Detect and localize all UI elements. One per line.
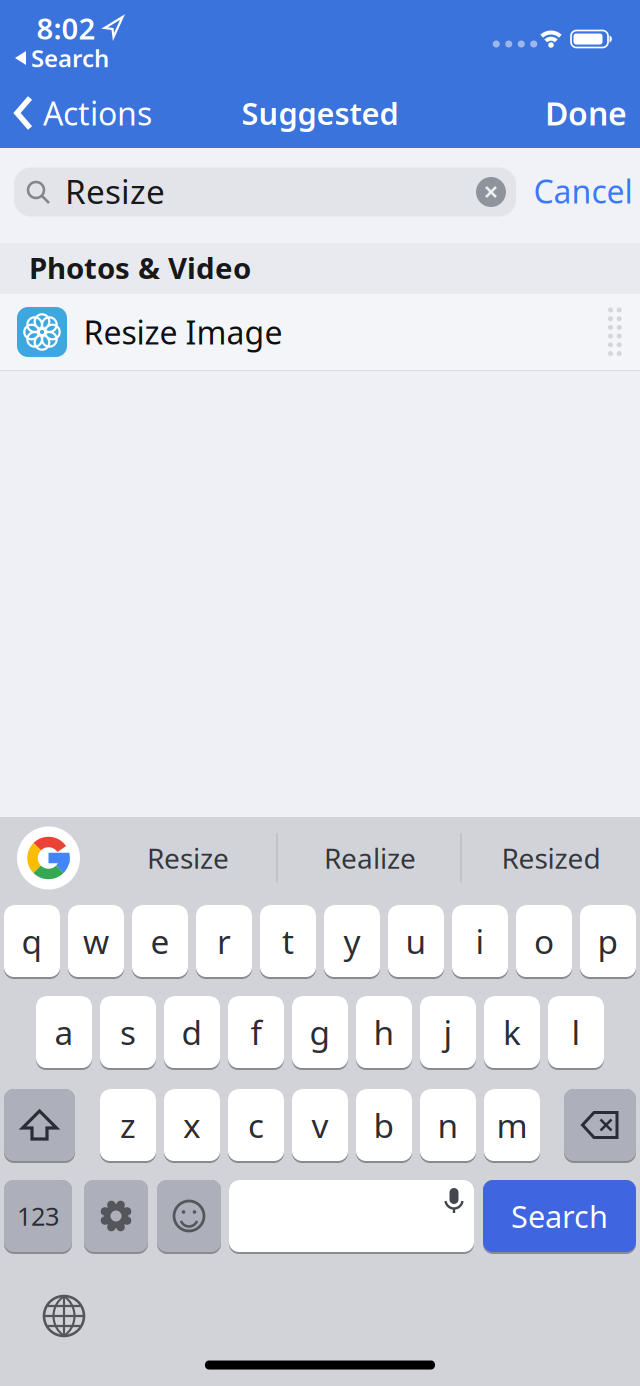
button[interactable]: i — [452, 905, 508, 979]
button[interactable]: l — [548, 996, 604, 1070]
button[interactable]: h — [356, 996, 412, 1070]
button[interactable]: c — [228, 1089, 284, 1163]
staticText: e — [150, 919, 169, 963]
button[interactable]: p — [580, 905, 636, 979]
button[interactable]: Cancel — [533, 170, 632, 212]
button[interactable]: k — [484, 996, 540, 1070]
staticText: y — [343, 919, 360, 963]
staticText: j — [443, 1010, 452, 1054]
button[interactable]: j — [420, 996, 476, 1070]
button[interactable]: n — [420, 1089, 476, 1163]
button[interactable]: Search — [15, 42, 109, 74]
button[interactable]: b — [356, 1089, 412, 1163]
staticText: Resized — [501, 839, 600, 877]
button[interactable]: Resize — [103, 823, 273, 893]
button[interactable]: s — [100, 996, 156, 1070]
staticText: 8:02 — [36, 8, 95, 47]
staticText: Photos & Video — [29, 248, 251, 287]
staticText: q — [21, 919, 42, 963]
staticText: z — [120, 1103, 136, 1147]
button[interactable]: Google search — [17, 826, 80, 889]
staticText: Search — [511, 1196, 608, 1236]
staticText: Realize — [324, 839, 416, 877]
staticText: Search — [31, 42, 109, 74]
staticText: a — [54, 1010, 73, 1054]
button[interactable]: y — [324, 905, 380, 979]
staticText: o — [534, 919, 554, 963]
button[interactable]: e — [132, 905, 188, 979]
button[interactable]: Actions — [14, 92, 152, 134]
staticText: b — [373, 1103, 394, 1147]
staticText: i — [475, 919, 484, 963]
button[interactable]: f — [228, 996, 284, 1070]
button[interactable]: a — [36, 996, 92, 1070]
staticText: k — [503, 1010, 521, 1054]
button[interactable]: Delete — [564, 1089, 636, 1163]
button[interactable]: Resize Image — [0, 294, 640, 371]
button[interactable]: Done — [545, 92, 627, 134]
button[interactable]: t — [260, 905, 316, 979]
button[interactable]: m — [484, 1089, 540, 1163]
staticText: f — [250, 1010, 261, 1054]
button[interactable]: Resized — [466, 823, 636, 893]
staticText: r — [217, 919, 231, 963]
button[interactable]: w — [68, 905, 124, 979]
staticText: Suggested — [241, 93, 398, 133]
staticText: n — [437, 1103, 458, 1147]
staticText: Resize — [65, 169, 165, 213]
button[interactable]: v — [292, 1089, 348, 1163]
button[interactable]: z — [100, 1089, 156, 1163]
staticText: c — [248, 1103, 264, 1147]
staticText: u — [405, 919, 426, 963]
staticText: t — [282, 919, 294, 963]
button[interactable]: Search — [483, 1180, 636, 1254]
button[interactable]: q — [4, 905, 60, 979]
button[interactable]: u — [388, 905, 444, 979]
staticText: Resize Image — [83, 311, 282, 353]
staticText: 123 — [17, 1199, 59, 1233]
staticText: m — [496, 1103, 527, 1147]
button[interactable]: x — [164, 1089, 220, 1163]
button[interactable]: 123 — [4, 1180, 72, 1254]
button[interactable]: Realize — [285, 823, 455, 893]
button[interactable]: d — [164, 996, 220, 1070]
button[interactable]: r — [196, 905, 252, 979]
button[interactable]: g — [292, 996, 348, 1070]
button[interactable]: Emoji — [157, 1180, 221, 1254]
button[interactable]: Shift — [4, 1089, 75, 1163]
staticText: g — [309, 1010, 330, 1054]
button[interactable]: Clear text — [476, 177, 506, 207]
staticText: s — [120, 1010, 136, 1054]
staticText: v — [311, 1103, 328, 1147]
staticText: w — [83, 919, 109, 963]
button[interactable]: Next keyboard — [42, 1294, 86, 1338]
staticText: Done — [545, 92, 627, 134]
staticText: d — [181, 1010, 202, 1054]
button[interactable]: Keyboard settings — [84, 1180, 148, 1254]
staticText: x — [183, 1103, 201, 1147]
staticText: Cancel — [533, 170, 632, 212]
button[interactable]: o — [516, 905, 572, 979]
staticText: l — [571, 1010, 580, 1054]
button[interactable]: Dictation — [442, 1187, 466, 1213]
staticText: Resize — [147, 839, 229, 877]
staticText: h — [373, 1010, 394, 1054]
staticText: Actions — [43, 92, 152, 134]
staticText: p — [597, 919, 618, 963]
button[interactable]: Space — [229, 1180, 474, 1254]
